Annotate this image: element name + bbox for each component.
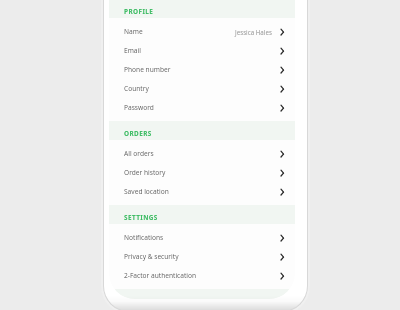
staticText: Jessica Hales (235, 28, 272, 36)
staticText: Saved location (124, 187, 169, 196)
staticText: Privacy & security (124, 252, 179, 261)
staticText: PROFILE (124, 7, 154, 16)
button[interactable]: Email (109, 41, 295, 60)
button[interactable]: All orders (109, 144, 295, 163)
staticText: Country (124, 84, 149, 93)
staticText: All orders (124, 149, 154, 158)
staticText: ORDERS (124, 129, 152, 138)
button[interactable]: Name (109, 22, 295, 41)
staticText: Notifications (124, 233, 164, 242)
staticText: SETTINGS (124, 213, 158, 222)
staticText: Order history (124, 168, 166, 177)
button[interactable]: Country (109, 79, 295, 98)
button[interactable]: Order history (109, 163, 295, 182)
button[interactable]: Phone number (109, 60, 295, 79)
staticText: Name (124, 27, 143, 36)
button[interactable]: 2-Factor authentication (109, 266, 295, 285)
staticText: Email (124, 46, 141, 55)
staticText: 2-Factor authentication (124, 271, 197, 280)
button[interactable]: Saved location (109, 182, 295, 201)
button[interactable]: Password (109, 98, 295, 117)
staticText: Phone number (124, 65, 171, 74)
staticText: Password (124, 103, 154, 112)
button[interactable]: Privacy & security (109, 247, 295, 266)
button[interactable]: Notifications (109, 228, 295, 247)
